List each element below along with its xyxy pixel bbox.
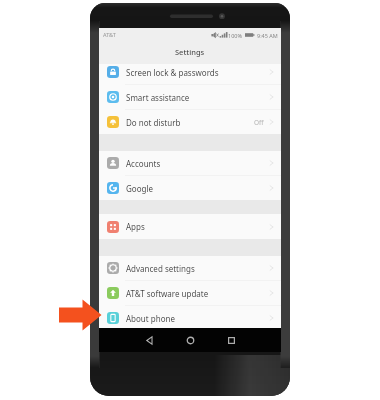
staticText: Apps (126, 221, 145, 232)
staticText: Advanced settings (126, 263, 195, 274)
staticText: AT&T (103, 31, 116, 38)
staticText: About phone (126, 313, 175, 324)
staticText: 9:45 AM (257, 32, 278, 39)
button[interactable]: Google (99, 176, 281, 200)
staticText: AT&T software update (126, 288, 209, 299)
staticText: Off (254, 118, 264, 127)
button[interactable]: Advanced settings (99, 256, 281, 280)
button[interactable]: Back (140, 331, 158, 349)
button[interactable]: Apps (99, 214, 281, 239)
button[interactable]: Home (181, 331, 199, 349)
button[interactable]: AT&T software update (99, 281, 281, 305)
button[interactable]: Screen lock & passwords (99, 60, 281, 84)
staticText: Smart assistance (126, 92, 190, 103)
staticText: Accounts (126, 158, 161, 169)
button[interactable]: Smart assistance (99, 85, 281, 109)
button[interactable]: Recent apps (222, 331, 240, 349)
staticText: Google (126, 183, 153, 194)
button[interactable]: About phone (99, 306, 281, 330)
staticText: Screen lock & passwords (126, 67, 219, 78)
button[interactable]: Do not disturb (99, 110, 281, 134)
button[interactable]: Accounts (99, 151, 281, 175)
staticText: 100% (228, 32, 243, 39)
staticText: Do not disturb (126, 117, 181, 128)
staticText: Settings (175, 47, 205, 57)
